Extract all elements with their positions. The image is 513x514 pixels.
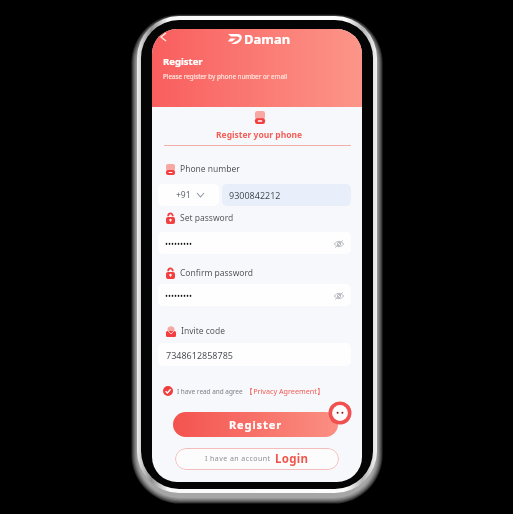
- staticText: Login: [275, 451, 309, 467]
- button[interactable]: 9300842212: [222, 184, 351, 206]
- button[interactable]: I have read and agree: [163, 386, 324, 396]
- staticText: •••••••••: [165, 290, 193, 301]
- staticText: •••••••••: [165, 238, 193, 249]
- button[interactable]: +91: [158, 184, 219, 206]
- button[interactable]: Register: [173, 412, 338, 437]
- staticText: Confirm password: [180, 267, 254, 279]
- staticText: I have read and agree: [177, 387, 243, 396]
- staticText: Daman: [244, 30, 291, 48]
- staticText: I have an account: [205, 454, 271, 464]
- staticText: Register: [229, 417, 283, 432]
- staticText: 【Privacy Agreement】: [246, 386, 324, 396]
- button[interactable]: Back: [155, 29, 172, 45]
- staticText: 9300842212: [229, 189, 281, 201]
- staticText: Register your phone: [216, 129, 303, 141]
- staticText: Register: [163, 55, 203, 68]
- button[interactable]: •••••••••: [158, 232, 351, 254]
- button[interactable]: Show password: [332, 237, 345, 250]
- button[interactable]: Show password: [332, 289, 345, 302]
- button[interactable]: Register your phone: [192, 107, 327, 137]
- button[interactable]: 7348612858785: [158, 343, 351, 366]
- staticText: Invite code: [181, 325, 225, 337]
- staticText: 7348612858785: [166, 349, 233, 361]
- staticText: Set password: [180, 212, 234, 224]
- button[interactable]: •••••••••: [158, 284, 351, 306]
- staticText: +91: [176, 189, 191, 201]
- button[interactable]: Customer support: [328, 401, 352, 425]
- button[interactable]: I have an account: [175, 448, 339, 470]
- staticText: Please register by phone number or email: [163, 72, 288, 81]
- staticText: Phone number: [180, 163, 240, 175]
